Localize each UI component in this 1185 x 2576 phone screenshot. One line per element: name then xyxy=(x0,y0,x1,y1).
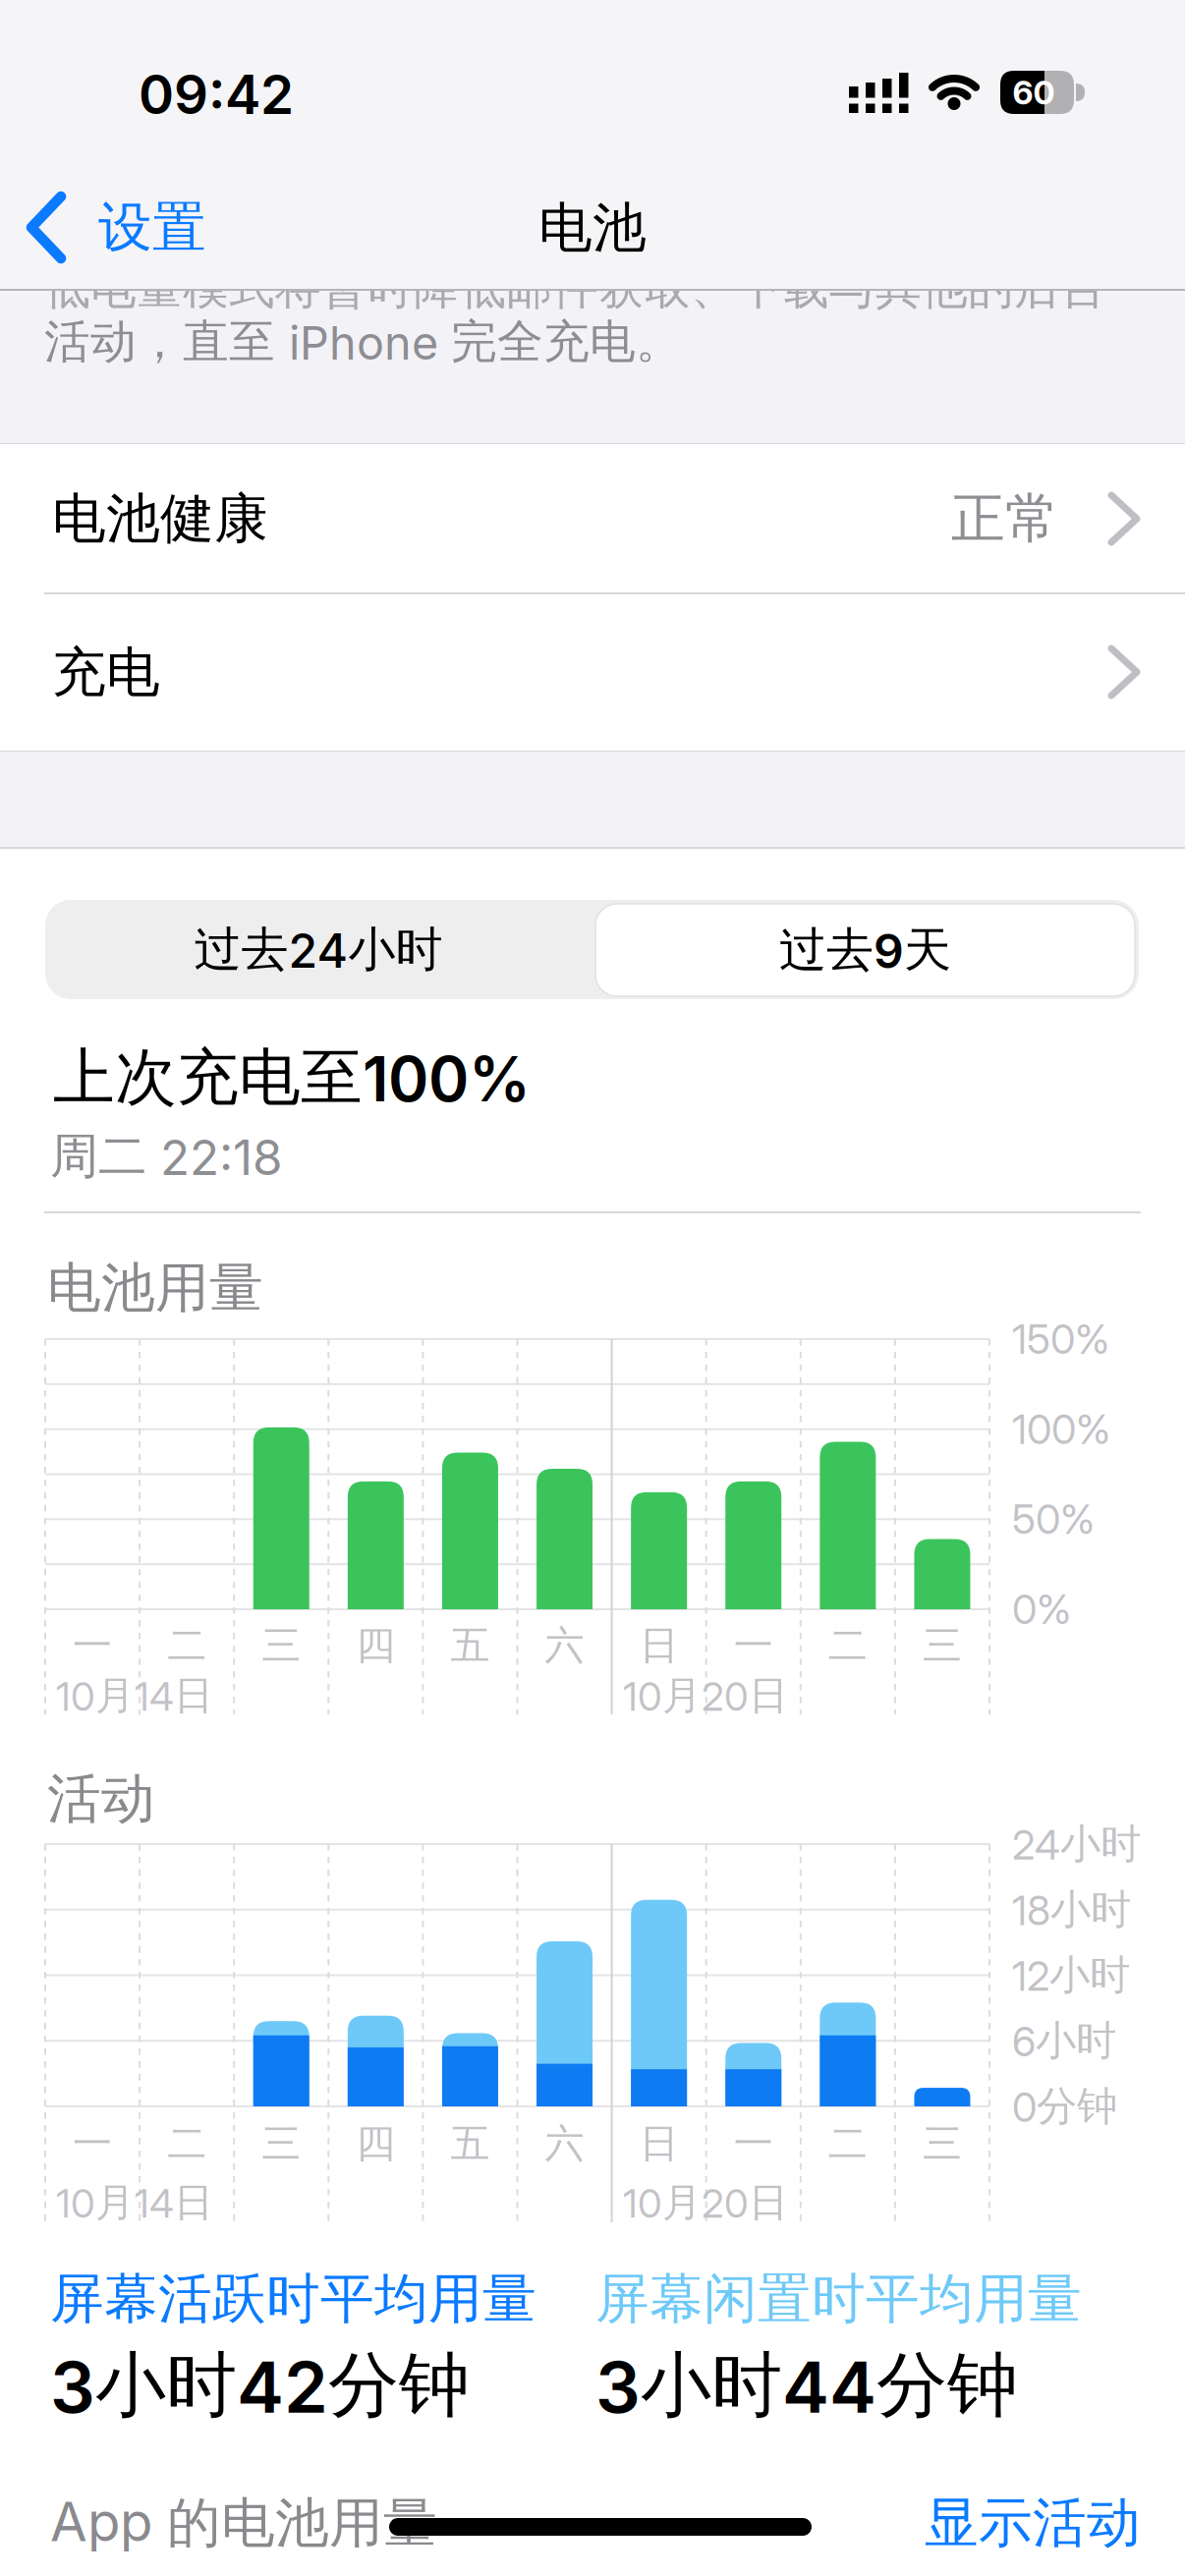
staticText: 设置 xyxy=(98,194,206,260)
staticText: 过去9天 xyxy=(779,921,951,979)
staticText: 六 xyxy=(545,2120,584,2168)
staticText: 10月20日 xyxy=(623,2178,788,2227)
staticText: 日 xyxy=(639,2120,679,2168)
staticText: 10月14日 xyxy=(56,2178,213,2227)
staticText: 过去24小时 xyxy=(194,921,443,979)
button[interactable]: 显示活动 xyxy=(0,2490,1185,2556)
staticText: 一 xyxy=(73,2120,112,2168)
staticText: 六 xyxy=(545,1621,584,1670)
staticText: 10月14日 xyxy=(56,1672,213,1720)
staticText: 10月20日 xyxy=(623,1672,788,1720)
button[interactable]: 充电 xyxy=(0,593,1185,752)
staticText: 12小时 xyxy=(1012,1950,1130,2000)
staticText: 五 xyxy=(450,1621,490,1670)
staticText: 周二 22:18 xyxy=(50,1127,283,1186)
staticText: 五 xyxy=(450,2120,490,2168)
staticText: 四 xyxy=(356,1621,395,1670)
staticText: 二 xyxy=(828,1621,867,1670)
staticText: 09:42 xyxy=(139,63,294,126)
button[interactable]: 过去9天 xyxy=(595,904,1135,996)
staticText: 二 xyxy=(828,2120,867,2168)
staticText: 显示活动 xyxy=(925,2490,1141,2556)
staticText: 0分钟 xyxy=(1012,2081,1117,2131)
staticText: 50% xyxy=(1012,1495,1095,1543)
staticText: 屏幕闲置时平均用量 xyxy=(595,2266,1082,2332)
staticText: 日 xyxy=(639,1621,679,1670)
staticText: 充电 xyxy=(52,639,160,705)
staticText: 电池 xyxy=(538,195,647,261)
staticText: 18小时 xyxy=(1012,1885,1131,1935)
staticText: 一 xyxy=(73,1621,112,1670)
staticText: 四 xyxy=(356,2120,395,2168)
staticText: 6小时 xyxy=(1012,2016,1116,2066)
staticText: 上次充电至100% xyxy=(53,1040,531,1116)
staticText: 150% xyxy=(1012,1315,1109,1363)
staticText: 0% xyxy=(1012,1585,1071,1633)
button[interactable]: 设置 xyxy=(16,189,206,266)
staticText: 三 xyxy=(923,2120,962,2168)
staticText: 60 xyxy=(1013,73,1055,112)
staticText: 3小时44分钟 xyxy=(595,2342,1018,2429)
button[interactable]: 电池健康 xyxy=(0,444,1185,593)
staticText: 3小时42分钟 xyxy=(50,2342,470,2429)
staticText: 低电量模式将暂时降低邮件获取、下载与其他的后台 xyxy=(44,260,1106,316)
staticText: 一 xyxy=(734,2120,773,2168)
staticText: 24小时 xyxy=(1012,1819,1141,1869)
staticText: 正常 xyxy=(951,486,1059,552)
staticText: 三 xyxy=(262,1621,301,1670)
button[interactable]: 过去24小时 xyxy=(45,900,592,999)
staticText: App 的电池用量 xyxy=(50,2490,437,2556)
staticText: 电池用量 xyxy=(47,1255,263,1321)
staticText: 三 xyxy=(262,2120,301,2168)
staticText: 活动，直至 iPhone 完全充电。 xyxy=(44,314,682,370)
staticText: 活动 xyxy=(47,1766,155,1832)
staticText: 电池健康 xyxy=(52,486,268,552)
staticText: 二 xyxy=(167,2120,206,2168)
staticText: 一 xyxy=(734,1621,773,1670)
staticText: 三 xyxy=(923,1621,962,1670)
staticText: 100% xyxy=(1012,1405,1110,1453)
staticText: 二 xyxy=(167,1621,206,1670)
staticText: 屏幕活跃时平均用量 xyxy=(50,2266,536,2332)
